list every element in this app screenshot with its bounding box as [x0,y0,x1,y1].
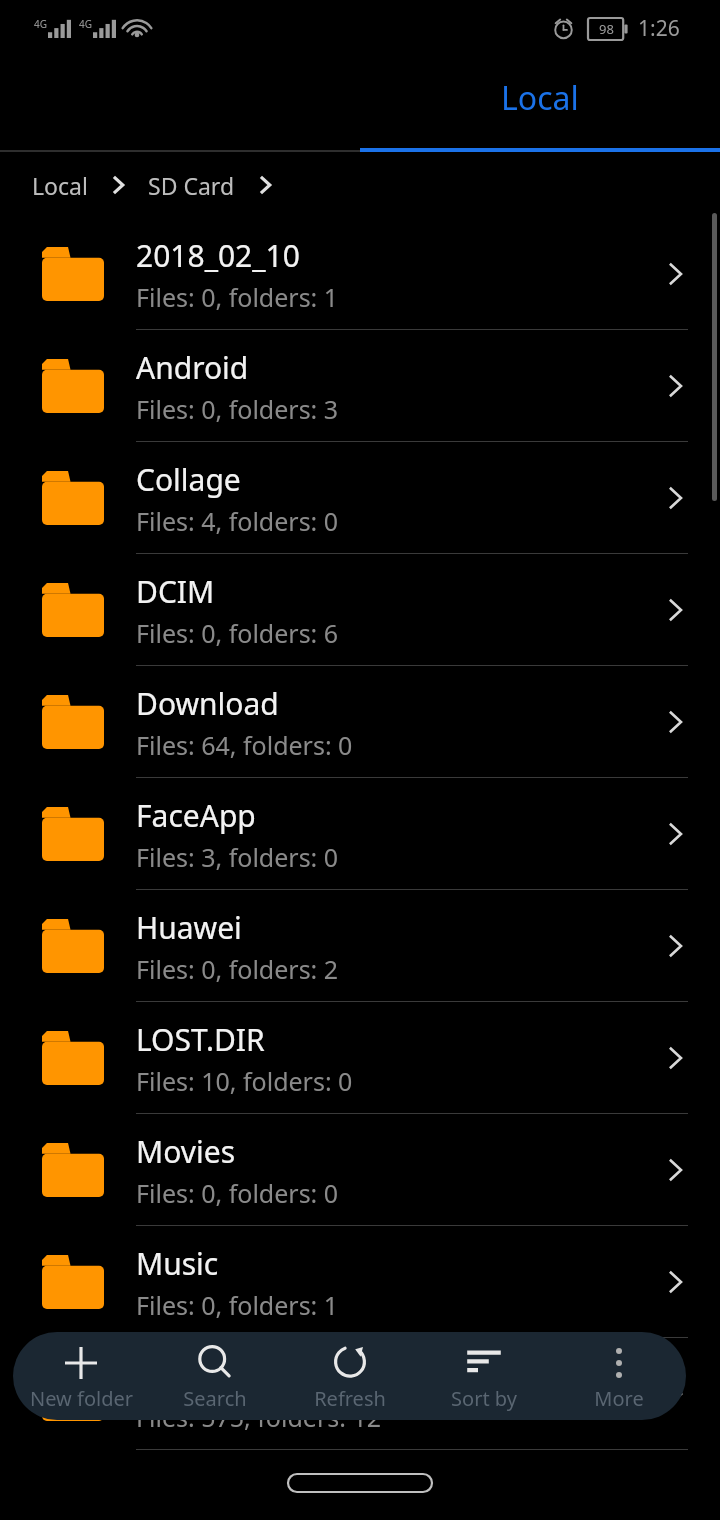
button[interactable]: DCIM [0,554,720,666]
button[interactable]: Music [0,1226,720,1338]
button[interactable]: FaceApp [0,778,720,890]
button[interactable]: New folder [14,1332,148,1420]
other: Search [195,1343,235,1383]
other: Sort by [464,1343,504,1383]
staticText: New folder [30,1385,133,1412]
button[interactable]: Search [148,1332,282,1420]
button[interactable]: Movies [0,1114,720,1226]
button[interactable]: 2018_02_10 [0,218,720,330]
staticText: Refresh [314,1385,386,1412]
staticText: Files: 0, folders: 1 [136,280,339,314]
staticText: LOST.DIR [136,1019,265,1060]
staticText: Files: 3, folders: 0 [136,840,339,874]
staticText: Search [183,1385,247,1412]
button[interactable]: Refresh [283,1332,417,1420]
staticText: Collage [136,459,241,500]
staticText: Music [136,1243,219,1284]
staticText: Files: 0, folders: 0 [136,1176,339,1210]
staticText: 2018_02_10 [136,235,300,276]
button[interactable]: More [552,1332,686,1420]
staticText: FaceApp [136,795,256,836]
staticText: SD Card [148,170,235,201]
staticText: Files: 0, folders: 1 [136,1288,339,1322]
button[interactable]: Collage [0,442,720,554]
staticText: Files: 0, folders: 6 [136,616,339,650]
button[interactable]: Sort by [417,1332,551,1420]
button[interactable]: SD Card [148,170,235,201]
other: New folder [61,1343,101,1383]
staticText: Pictures [136,1355,249,1396]
staticText: Files: 10, folders: 0 [136,1064,353,1098]
staticText: Local [32,170,88,201]
staticText: Local [501,76,579,120]
button[interactable]: Download [0,666,720,778]
staticText: 4G [79,17,92,31]
other: More [599,1343,639,1383]
staticText: Movies [136,1131,236,1172]
staticText: Files: 4, folders: 0 [136,504,339,538]
staticText: 1:26 [638,14,680,43]
staticText: Files: 575, folders: 12 [136,1400,382,1434]
button[interactable]: Huawei [0,890,720,1002]
staticText: 98 [599,20,614,38]
other: Refresh [330,1343,370,1383]
button[interactable]: LOST.DIR [0,1002,720,1114]
staticText: More [594,1385,644,1412]
staticText: Files: 64, folders: 0 [136,728,353,762]
staticText: Huawei [136,907,242,948]
staticText: Files: 0, folders: 2 [136,952,339,986]
button[interactable]: Local [360,56,720,152]
button[interactable]: Android [0,330,720,442]
staticText: Android [136,347,249,388]
staticText: Sort by [451,1385,517,1412]
staticText: Download [136,683,279,724]
staticText: DCIM [136,571,215,612]
button[interactable]: Local [32,170,88,201]
staticText: Files: 0, folders: 3 [136,392,339,426]
button[interactable]: Pictures [0,1338,720,1450]
staticText: 4G [34,17,47,31]
